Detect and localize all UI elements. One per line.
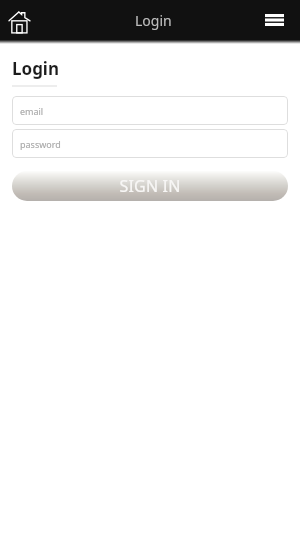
staticText: SIGN IN [119,175,181,197]
button[interactable]: email [12,96,288,125]
button[interactable]: password [12,129,288,158]
button[interactable]: SIGN IN [12,171,288,201]
staticText: email [20,105,44,117]
staticText: Login [135,11,172,30]
button[interactable]: Home [4,7,34,37]
staticText: password [20,138,61,150]
staticText: Login [12,57,60,80]
button[interactable]: Menu [259,5,289,35]
